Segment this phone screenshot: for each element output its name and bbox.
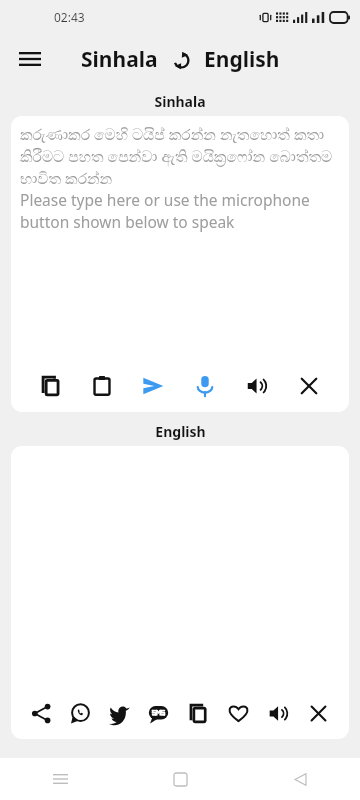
button[interactable]: Speak with microphone [179, 360, 231, 412]
button[interactable]: කරුණාකර මෙහි ටයිප් කරන්න නැතහොත් කතා කිර… [20, 123, 340, 360]
button[interactable]: Sinhala [79, 45, 160, 74]
button[interactable]: Send SMS [139, 687, 178, 739]
staticText: Sinhala [154, 92, 206, 111]
button[interactable]: Share on Twitter [100, 687, 139, 739]
button[interactable]: Listen [258, 687, 298, 739]
button[interactable]: Paste text [76, 360, 127, 412]
button[interactable]: Add to favourites [218, 687, 258, 739]
staticText: 02:43 [54, 9, 85, 25]
staticText: කරුණාකර මෙහි ටයිප් කරන්න නැතහොත් කතා කිර… [20, 123, 340, 233]
button[interactable]: Share [22, 687, 61, 739]
button[interactable]: Recent apps [32, 758, 88, 800]
button[interactable]: English [202, 45, 282, 74]
button[interactable]: Swap languages [167, 46, 195, 74]
button[interactable]: Listen [231, 360, 283, 412]
button[interactable]: Clear text [283, 360, 335, 412]
button[interactable]: Open navigation menu [8, 37, 52, 81]
button[interactable]: Copy text [25, 360, 76, 412]
button[interactable]: Send on WhatsApp [61, 687, 100, 739]
button[interactable]: Clear translation [298, 687, 338, 739]
staticText: Sinhala [81, 45, 158, 74]
button[interactable]: Translate [127, 360, 179, 412]
button[interactable]: Copy translation [178, 687, 218, 739]
button[interactable]: Home [152, 758, 208, 800]
staticText: English [155, 422, 206, 441]
staticText: English [204, 45, 280, 74]
button[interactable]: Back [272, 758, 328, 800]
